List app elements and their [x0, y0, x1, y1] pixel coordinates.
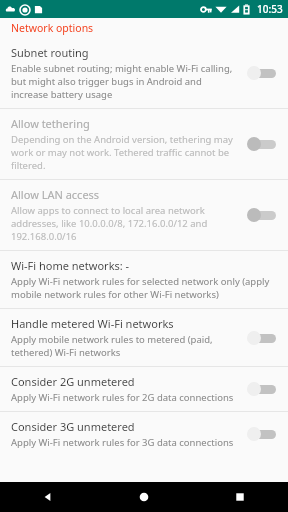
staticText: Consider 3G unmetered	[11, 419, 135, 434]
button[interactable]: Consider 2G unmetered	[0, 367, 288, 411]
staticText: Apply Wi-Fi network rules for 3G data co…	[11, 436, 234, 449]
staticText: Subnet routing	[11, 45, 89, 60]
button[interactable]: Wi-Fi home networks: -	[0, 251, 288, 308]
staticText: Consider 2G unmetered	[11, 374, 135, 389]
staticText: 10:53	[257, 2, 283, 16]
button[interactable]: Toggle	[246, 203, 280, 227]
button[interactable]: Allow tethering	[0, 109, 288, 179]
staticText: Wi-Fi home networks: -	[11, 258, 130, 273]
staticText: Apply Wi-Fi network rules for 2G data co…	[11, 391, 234, 404]
staticText: Network options	[11, 21, 94, 35]
button[interactable]: Back	[0, 482, 96, 512]
staticText: Enable subnet routing; might enable Wi-F…	[11, 62, 238, 101]
button[interactable]: Recent apps	[192, 482, 288, 512]
button[interactable]: Toggle	[246, 422, 280, 446]
button[interactable]: Subnet routing	[0, 38, 288, 108]
button[interactable]: Toggle	[246, 326, 280, 350]
button[interactable]: Toggle	[246, 61, 280, 85]
button[interactable]: Toggle	[246, 377, 280, 401]
staticText: Apply Wi-Fi network rules for selected n…	[11, 275, 280, 301]
button[interactable]: Consider 3G unmetered	[0, 412, 288, 456]
button[interactable]: Toggle	[246, 132, 280, 156]
staticText: Allow LAN access	[11, 187, 100, 202]
button[interactable]: Allow LAN access	[0, 180, 288, 250]
button[interactable]: Handle metered Wi-Fi networks	[0, 309, 288, 366]
staticText: Allow apps to connect to local area netw…	[11, 204, 238, 243]
staticText: Apply mobile network rules to metered (p…	[11, 333, 238, 359]
button[interactable]: Home	[96, 482, 192, 512]
staticText: Allow tethering	[11, 116, 90, 131]
staticText: Depending on the Android version, tether…	[11, 133, 238, 172]
staticText: Handle metered Wi-Fi networks	[11, 316, 174, 331]
